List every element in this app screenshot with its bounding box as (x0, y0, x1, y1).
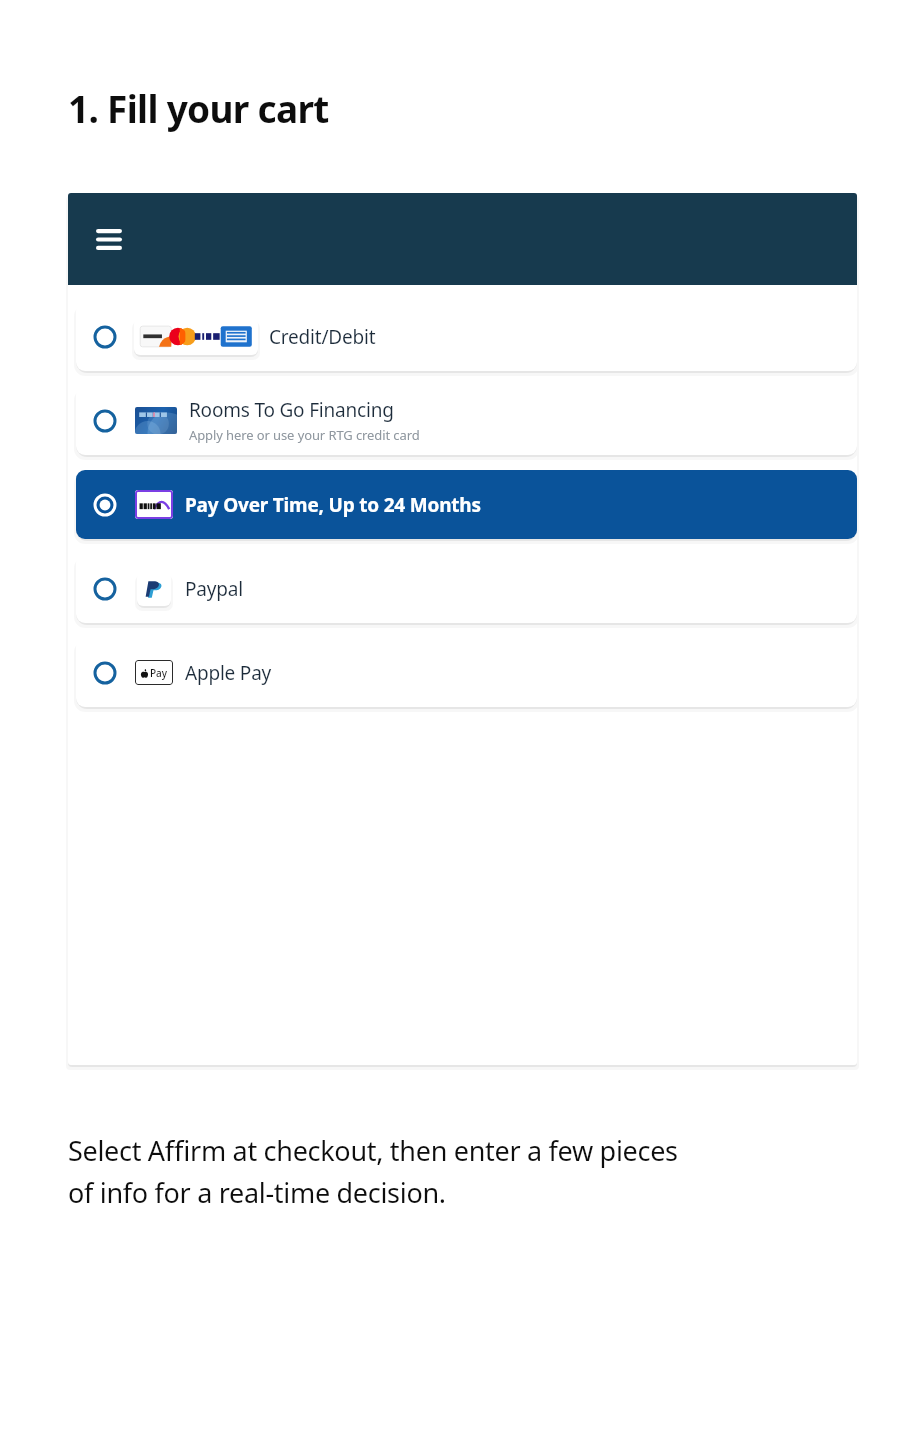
button[interactable]: Menu (91, 221, 127, 257)
button[interactable]: Pay (76, 638, 857, 707)
staticText: Paypal (185, 576, 243, 602)
button[interactable]: Credit/Debit (76, 302, 857, 371)
staticText: Credit/Debit (269, 324, 376, 350)
button[interactable]: Paypal (76, 554, 857, 623)
staticText: Pay Over Time, Up to 24 Months (185, 492, 481, 518)
button[interactable]: Pay Over Time, Up to 24 Months (76, 470, 857, 539)
staticText: 1. Fill your cart (68, 83, 329, 133)
staticText: Rooms To Go Financing (189, 397, 394, 423)
button[interactable]: Rooms To Go Financing (76, 386, 857, 455)
staticText: Apply here or use your RTG credit card (189, 426, 420, 444)
staticText: Pay (150, 666, 168, 680)
staticText: Select Affirm at checkout, then enter a … (68, 1132, 687, 1211)
staticText: Apple Pay (185, 660, 272, 686)
